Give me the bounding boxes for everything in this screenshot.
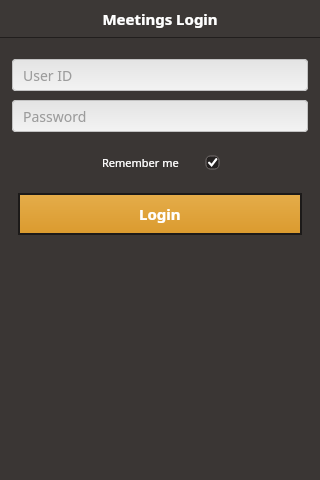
other: Remember me checkbox xyxy=(206,156,219,169)
staticText: Login xyxy=(139,204,181,224)
staticText: Password xyxy=(23,107,87,126)
button[interactable]: Login xyxy=(20,195,300,233)
staticText: Meetings Login xyxy=(102,9,218,29)
button[interactable]: Remember me xyxy=(98,152,223,173)
button[interactable]: User ID xyxy=(12,59,308,91)
staticText: Remember me xyxy=(102,155,179,170)
staticText: User ID xyxy=(23,66,73,85)
button[interactable]: Password xyxy=(12,100,308,132)
